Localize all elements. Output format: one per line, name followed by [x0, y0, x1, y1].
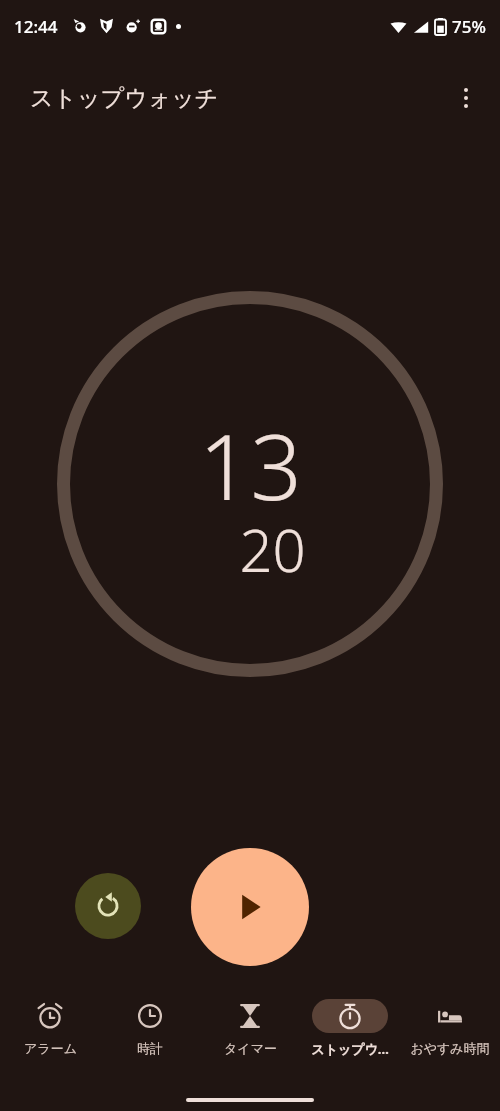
button[interactable]: Start: [191, 848, 309, 966]
button[interactable]: More options: [442, 74, 490, 122]
button[interactable]: タイマー: [200, 992, 300, 1056]
staticText: 時計: [137, 1040, 163, 1056]
staticText: おやすみ時間: [410, 1040, 490, 1056]
button[interactable]: 時計: [100, 992, 200, 1056]
staticText: ストップウ…: [311, 1040, 389, 1058]
staticText: 75%: [452, 15, 486, 38]
button[interactable]: ストップウ…: [300, 992, 400, 1058]
staticText: アラーム: [24, 1040, 77, 1056]
staticText: 13: [199, 404, 302, 527]
button[interactable]: おやすみ時間: [400, 992, 500, 1056]
staticText: ストップウォッチ: [30, 84, 219, 113]
staticText: 20: [239, 510, 306, 589]
staticText: タイマー: [224, 1040, 277, 1056]
button[interactable]: Reset: [75, 873, 141, 939]
staticText: 12:44: [14, 15, 58, 38]
button[interactable]: アラーム: [0, 992, 100, 1056]
